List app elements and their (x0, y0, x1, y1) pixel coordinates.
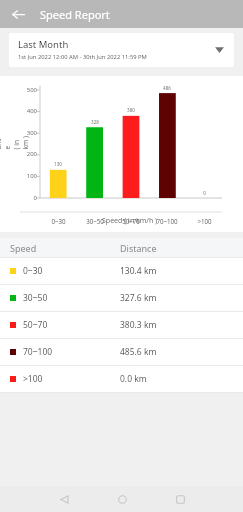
button[interactable]: Home (93, 486, 151, 512)
staticText: Last Month (18, 38, 69, 51)
staticText: >100 (197, 217, 212, 225)
staticText: 50‒70 (122, 217, 140, 225)
staticText: 327.6 km (120, 292, 157, 304)
staticText: 328 (91, 119, 99, 125)
staticText: 0 (203, 190, 206, 196)
staticText: 30‒50 (23, 292, 48, 304)
staticText: 0‒30 (51, 217, 66, 225)
button[interactable]: 50‒70 (0, 312, 243, 338)
staticText: 100 (26, 172, 37, 180)
staticText: 380 (127, 107, 135, 113)
staticText: 486 (163, 85, 171, 91)
staticText: 0.0 km (120, 373, 147, 385)
staticText: 130 (54, 161, 62, 167)
staticText: Distance (120, 242, 157, 254)
staticText: Speed ( in km/h ) (102, 216, 158, 226)
staticText: Distance ( in km ) (0, 135, 29, 149)
staticText: 300 (26, 129, 37, 137)
staticText: 0‒30 (23, 265, 43, 277)
button[interactable]: 70‒100 (0, 339, 243, 365)
button[interactable]: 0‒30 (0, 258, 243, 284)
staticText: 400 (26, 107, 37, 115)
button[interactable]: Back (35, 486, 93, 512)
button[interactable]: Recent apps (151, 486, 209, 512)
button[interactable]: Navigate up (7, 3, 29, 25)
staticText: 380.3 km (120, 319, 157, 331)
staticText: >100 (23, 373, 43, 385)
button[interactable]: Last Month (9, 33, 234, 67)
staticText: 500 (26, 86, 37, 94)
staticText: Speed Report (40, 7, 110, 22)
button[interactable]: 30‒50 (0, 285, 243, 311)
button[interactable]: >100 (0, 366, 243, 392)
other: Expand (214, 44, 225, 55)
staticText: 485.6 km (120, 346, 157, 358)
staticText: Speed (10, 242, 120, 254)
staticText: 0 (33, 194, 37, 202)
staticText: 30‒50 (86, 217, 104, 225)
staticText: 70‒100 (156, 217, 178, 225)
staticText: 70‒100 (23, 346, 53, 358)
staticText: 50‒70 (23, 319, 48, 331)
staticText: 200 (26, 150, 37, 158)
staticText: 1st Jun 2022 12:00 AM - 30th Jun 2022 11… (18, 53, 147, 61)
staticText: 130.4 km (120, 265, 157, 277)
